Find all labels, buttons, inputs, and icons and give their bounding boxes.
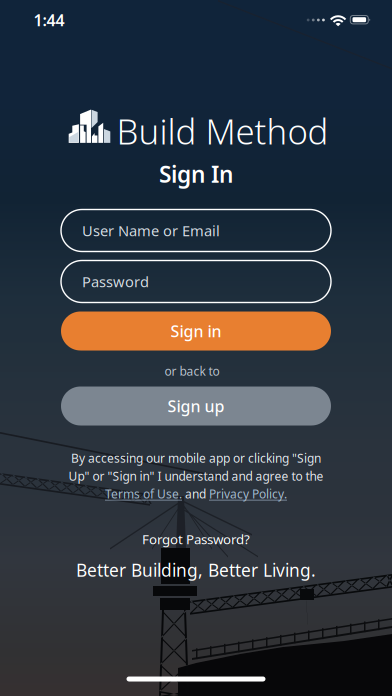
staticText: Build Method [116, 108, 328, 154]
staticText: Forgot Password? [142, 530, 250, 548]
button[interactable]: Sign up [61, 386, 331, 425]
button[interactable]: Terms of Use. [105, 486, 182, 502]
staticText: or back to [164, 363, 219, 379]
staticText: Sign In [159, 159, 233, 189]
staticText: and [182, 486, 209, 502]
staticText: Terms of Use. [105, 486, 182, 502]
staticText: Better Building, Better Living. [76, 558, 316, 581]
staticText: Sign up [167, 395, 224, 417]
staticText: Up" or "Sign in" I understand and agree … [68, 468, 323, 484]
staticText: Sign in [170, 320, 221, 342]
staticText: User Name or Email [82, 221, 220, 240]
staticText: 1:44 [33, 9, 64, 31]
button[interactable]: Forgot Password? [142, 530, 250, 548]
staticText: Privacy Policy. [209, 486, 287, 502]
button[interactable]: Privacy Policy. [209, 486, 287, 502]
staticText: By accessing our mobile app or clicking … [71, 450, 321, 466]
button[interactable]: Sign in [61, 311, 331, 350]
staticText: Password [82, 272, 149, 291]
